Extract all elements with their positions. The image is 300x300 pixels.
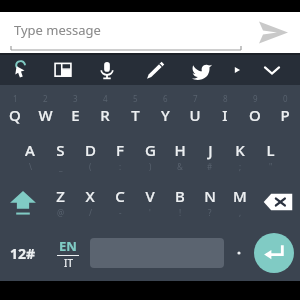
button[interactable]: 7: [180, 85, 210, 133]
staticText: ?: [208, 207, 212, 218]
staticText: H: [174, 140, 186, 160]
staticText: J: [208, 140, 213, 160]
button[interactable]: Voice input: [84, 55, 130, 85]
staticText: @: [57, 207, 65, 218]
button[interactable]: S: [45, 133, 75, 179]
staticText: D: [85, 140, 96, 160]
staticText: 4: [103, 93, 108, 104]
button[interactable]: Twitter: [180, 55, 224, 85]
staticText: ;: [239, 161, 242, 172]
staticText: P: [280, 105, 290, 125]
staticText: L: [266, 140, 275, 160]
button[interactable]: Backspace: [255, 179, 300, 225]
staticText: B: [175, 186, 185, 206]
button[interactable]: 1: [0, 85, 30, 133]
staticText: 8: [223, 93, 228, 104]
staticText: EN: [59, 237, 77, 255]
button[interactable]: 2: [30, 85, 60, 133]
staticText: Type message: [14, 21, 101, 39]
staticText: O: [249, 105, 261, 125]
staticText: 5: [133, 93, 138, 104]
staticText: Z: [56, 186, 65, 206]
button[interactable]: More: [224, 55, 250, 85]
staticText: /: [89, 207, 92, 218]
staticText: M: [233, 186, 247, 206]
button[interactable]: 8: [210, 85, 240, 133]
staticText: ): [149, 161, 152, 172]
button[interactable]: 3: [60, 85, 90, 133]
button[interactable]: D: [75, 133, 105, 179]
staticText: \: [29, 161, 32, 172]
staticText: 1: [13, 93, 18, 104]
button[interactable]: H: [165, 133, 195, 179]
button[interactable]: K: [225, 133, 255, 179]
staticText: 7: [193, 93, 198, 104]
staticText: 3: [73, 93, 78, 104]
button[interactable]: A: [15, 133, 45, 179]
button[interactable]: C: [105, 179, 135, 225]
staticText: T: [131, 105, 140, 125]
staticText: 0: [283, 93, 288, 104]
staticText: W: [38, 105, 53, 125]
button[interactable]: 5: [120, 85, 150, 133]
staticText: Y: [161, 105, 170, 125]
button[interactable]: Gesture typing: [0, 55, 42, 85]
button[interactable]: L: [255, 133, 285, 179]
staticText: E: [71, 105, 80, 125]
button[interactable]: 12#: [0, 225, 46, 281]
button[interactable]: J: [195, 133, 225, 179]
button[interactable]: EN: [46, 225, 90, 281]
staticText: 6: [163, 93, 168, 104]
button[interactable]: 6: [150, 85, 180, 133]
staticText: S: [56, 140, 65, 160]
staticText: 12#: [10, 244, 36, 263]
staticText: G: [145, 140, 156, 160]
staticText: 9: [253, 93, 258, 104]
staticText: U: [189, 105, 201, 125]
staticText: ,: [239, 207, 242, 218]
button[interactable]: Z: [45, 179, 75, 225]
staticText: R: [100, 105, 110, 125]
staticText: (: [89, 161, 92, 172]
staticText: ": [269, 161, 273, 172]
staticText: &: [177, 161, 183, 172]
staticText: C: [115, 186, 125, 206]
staticText: F: [116, 140, 124, 160]
button[interactable]: Send: [252, 12, 294, 53]
staticText: A: [25, 140, 35, 160]
button[interactable]: 4: [90, 85, 120, 133]
staticText: K: [235, 140, 245, 160]
button[interactable]: Keyboard layout EN: [42, 55, 84, 85]
button[interactable]: 0: [270, 85, 300, 133]
button[interactable]: 9: [240, 85, 270, 133]
button[interactable]: N: [195, 179, 225, 225]
staticText: X: [85, 186, 95, 206]
staticText: N: [204, 186, 216, 206]
button[interactable]: G: [135, 133, 165, 179]
staticText: 2: [43, 93, 48, 104]
button[interactable]: [224, 225, 254, 281]
button[interactable]: Enter: [254, 233, 294, 273]
button[interactable]: Shift: [0, 179, 45, 225]
button[interactable]: V: [135, 179, 165, 225]
staticText: ': [149, 207, 151, 218]
staticText: V: [145, 186, 155, 206]
staticText: Q: [9, 105, 21, 125]
button[interactable]: F: [105, 133, 135, 179]
staticText: :: [119, 161, 122, 172]
staticText: #: [207, 161, 213, 172]
button[interactable]: Handwriting: [130, 55, 180, 85]
staticText: _: [59, 161, 63, 172]
button[interactable]: X: [75, 179, 105, 225]
staticText: !: [179, 207, 182, 218]
staticText: I: [222, 105, 228, 125]
button[interactable]: B: [165, 179, 195, 225]
button[interactable]: Hide keyboard: [250, 55, 294, 85]
button[interactable]: M: [225, 179, 255, 225]
staticText: -: [119, 207, 122, 218]
staticText: IT: [64, 256, 73, 270]
